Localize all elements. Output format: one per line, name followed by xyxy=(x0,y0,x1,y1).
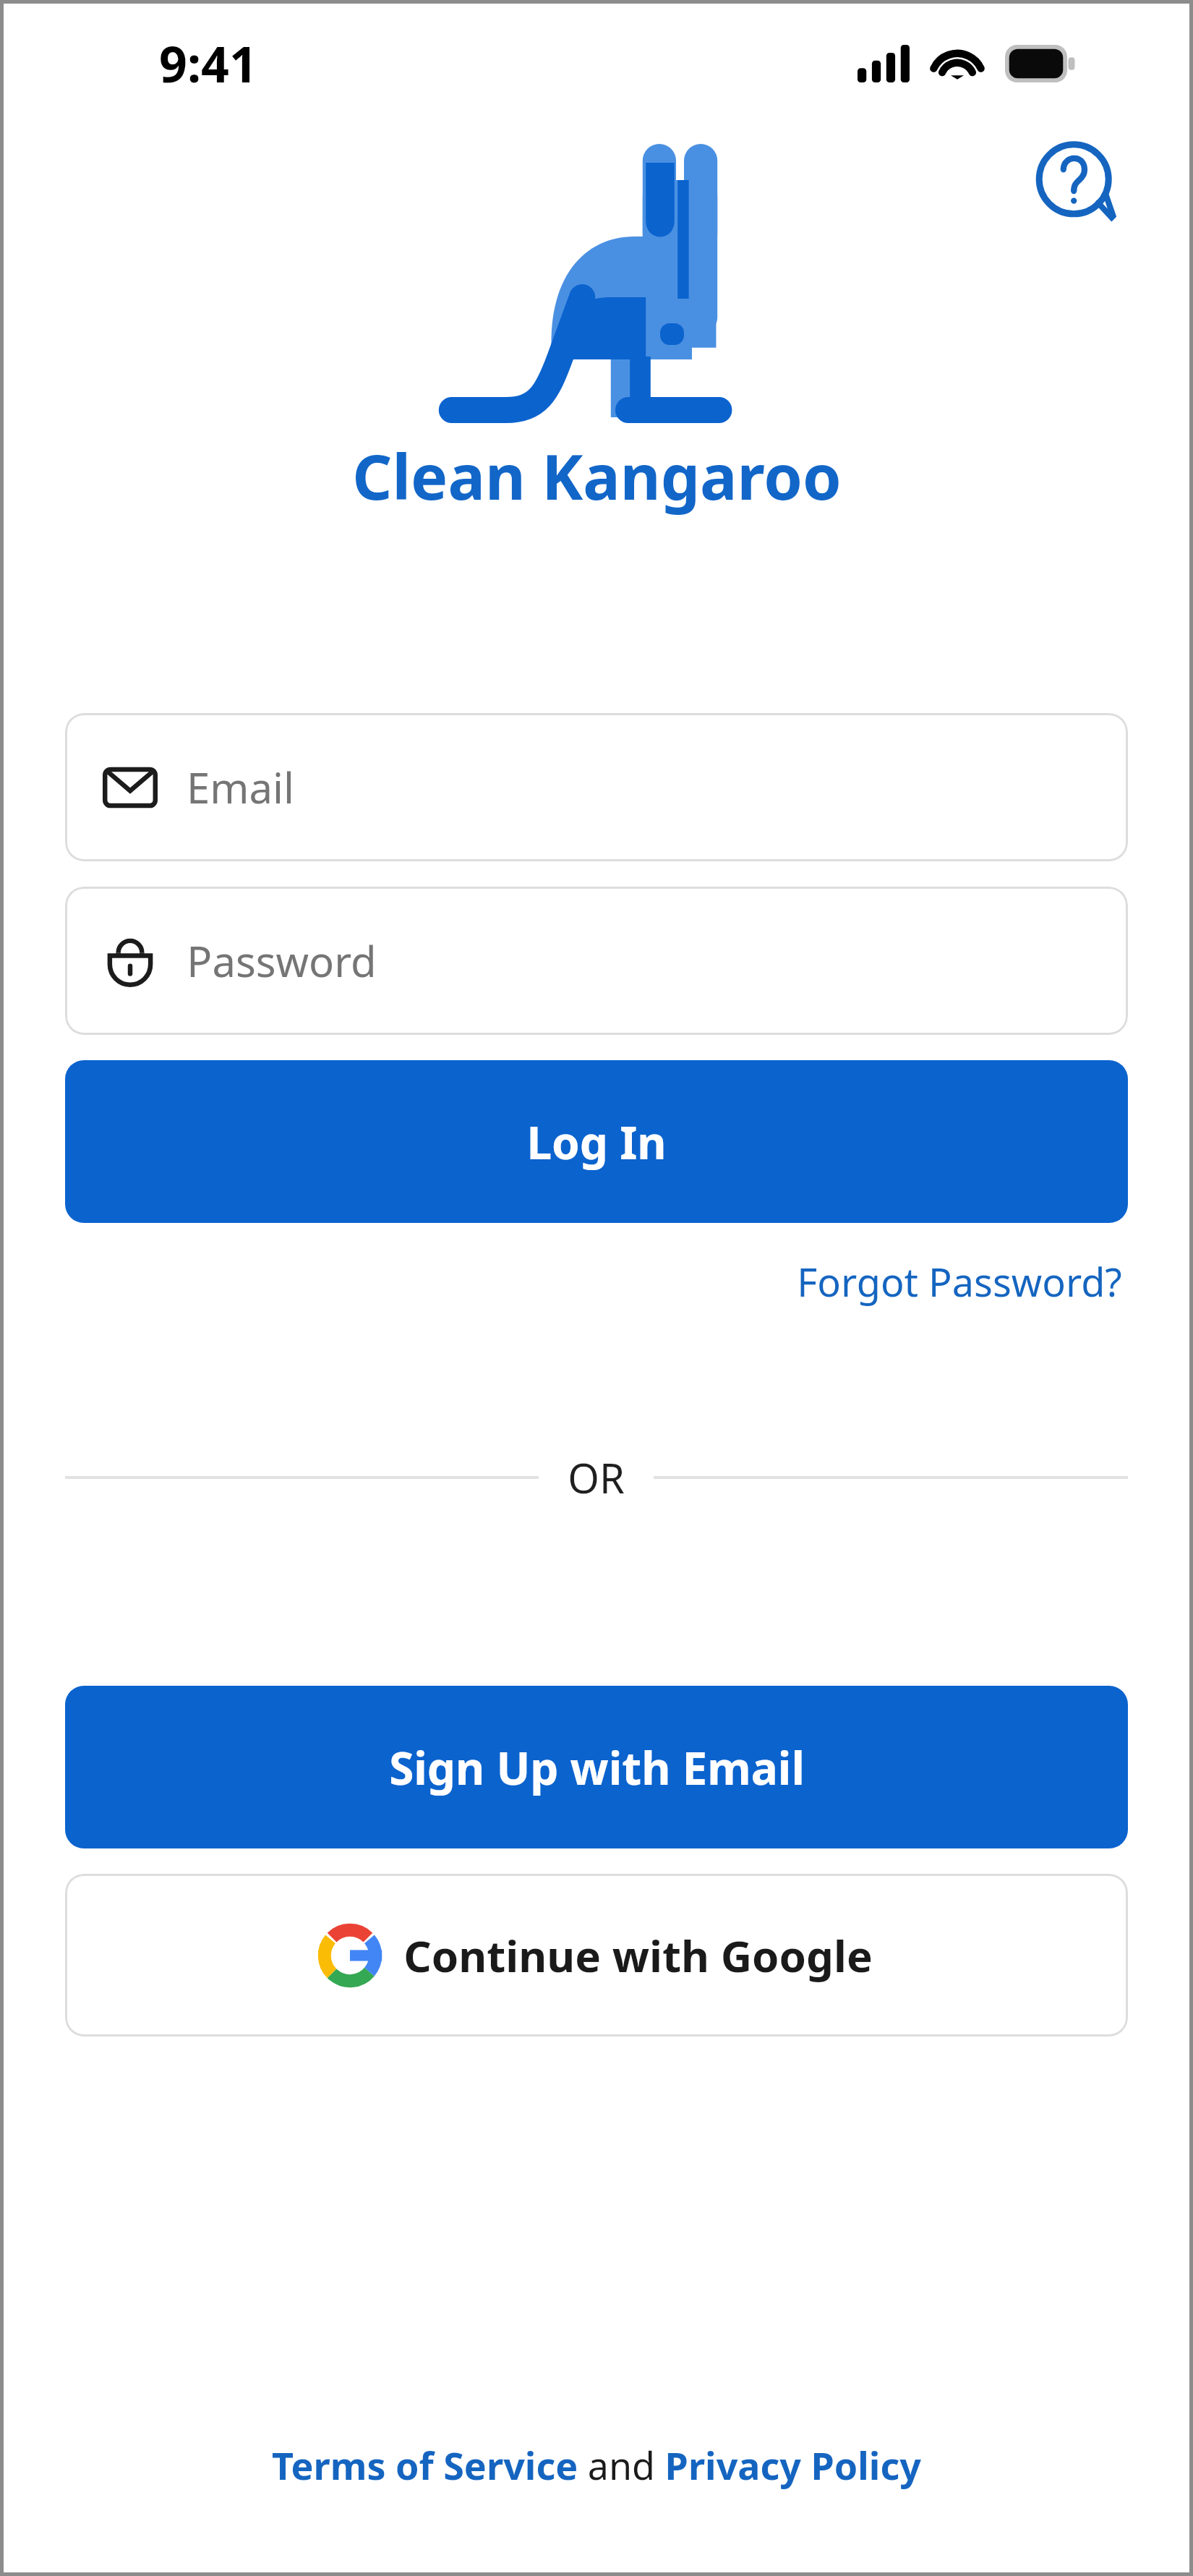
staticText: Forgot Password? xyxy=(797,1255,1122,1308)
button[interactable]: Password xyxy=(65,887,1128,1035)
staticText: Clean Kangaroo xyxy=(352,433,842,518)
staticText: Email xyxy=(187,759,294,816)
button[interactable]: Sign Up with Email xyxy=(65,1686,1128,1848)
button[interactable]: Terms of Service and Privacy Policy xyxy=(263,2434,930,2496)
staticText: Password xyxy=(187,932,377,989)
staticText: Log In xyxy=(526,1112,667,1172)
button[interactable]: Log In xyxy=(65,1060,1128,1223)
button[interactable]: Continue with Google xyxy=(65,1874,1128,2037)
button[interactable]: Forgot Password? xyxy=(791,1250,1128,1313)
button[interactable]: Help xyxy=(1027,134,1128,235)
staticText: Terms of Service and Privacy Policy xyxy=(272,2439,921,2491)
staticText: Continue with Google xyxy=(403,1926,873,1985)
staticText: 9:41 xyxy=(159,30,257,97)
staticText: Sign Up with Email xyxy=(389,1737,805,1798)
staticText: OR xyxy=(568,1450,625,1505)
button[interactable]: Email xyxy=(65,713,1128,861)
